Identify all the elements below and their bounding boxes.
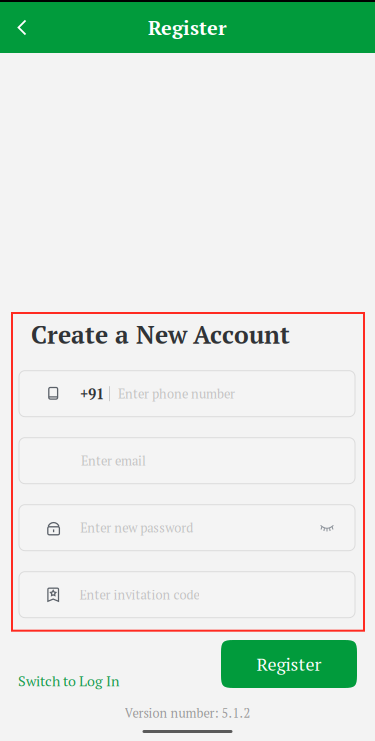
staticText: Enter phone number (118, 385, 235, 402)
button[interactable]: Enter new password (19, 505, 355, 551)
staticText: Register (256, 652, 321, 676)
button[interactable]: Enter phone number (19, 371, 355, 417)
staticText: Create a New Account (31, 318, 290, 351)
button[interactable]: Switch to Log In (18, 670, 178, 692)
staticText: Enter email (81, 452, 146, 469)
staticText: +91 (80, 384, 104, 403)
button[interactable]: Enter email (19, 438, 355, 484)
staticText: Enter invitation code (79, 586, 199, 603)
staticText: Version number: 5.1.2 (124, 705, 250, 721)
button[interactable]: Show password (309, 506, 345, 550)
staticText: Register (148, 14, 227, 41)
button[interactable]: Back (0, 2, 44, 53)
staticText: Enter new password (80, 519, 193, 536)
button[interactable]: Enter invitation code (19, 572, 355, 618)
button[interactable]: Register (221, 640, 357, 688)
staticText: Switch to Log In (18, 671, 119, 690)
